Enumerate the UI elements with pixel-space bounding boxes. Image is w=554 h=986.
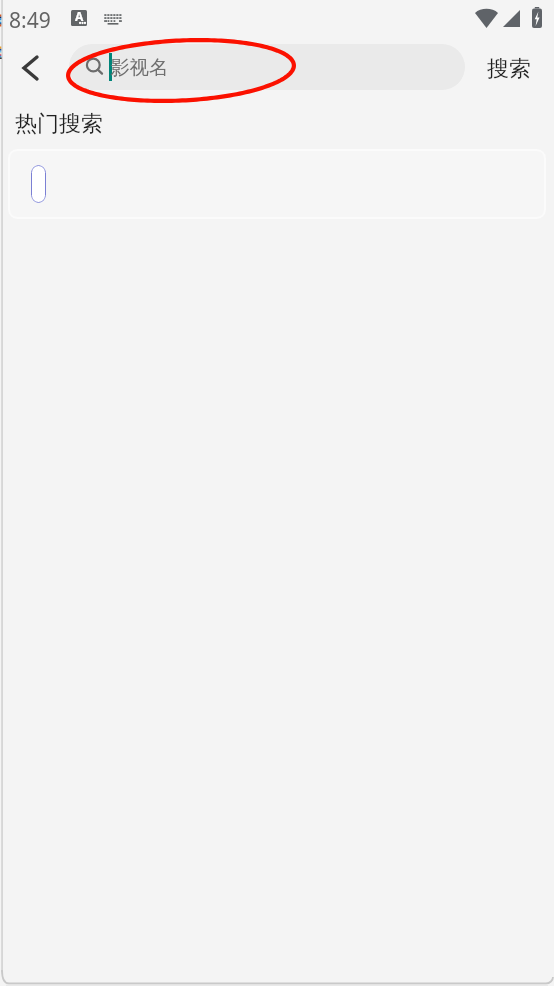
staticText: A xyxy=(75,10,84,24)
staticText: 8:49 xyxy=(9,6,51,35)
button[interactable]: Back xyxy=(6,44,54,92)
staticText: 影视名 xyxy=(110,55,169,80)
staticText: 搜索 xyxy=(487,55,531,83)
button[interactable]: 影视名 xyxy=(69,44,465,90)
button[interactable] xyxy=(31,165,46,203)
button[interactable]: 搜索 xyxy=(477,47,541,91)
staticText: 热门搜索 xyxy=(15,110,103,138)
